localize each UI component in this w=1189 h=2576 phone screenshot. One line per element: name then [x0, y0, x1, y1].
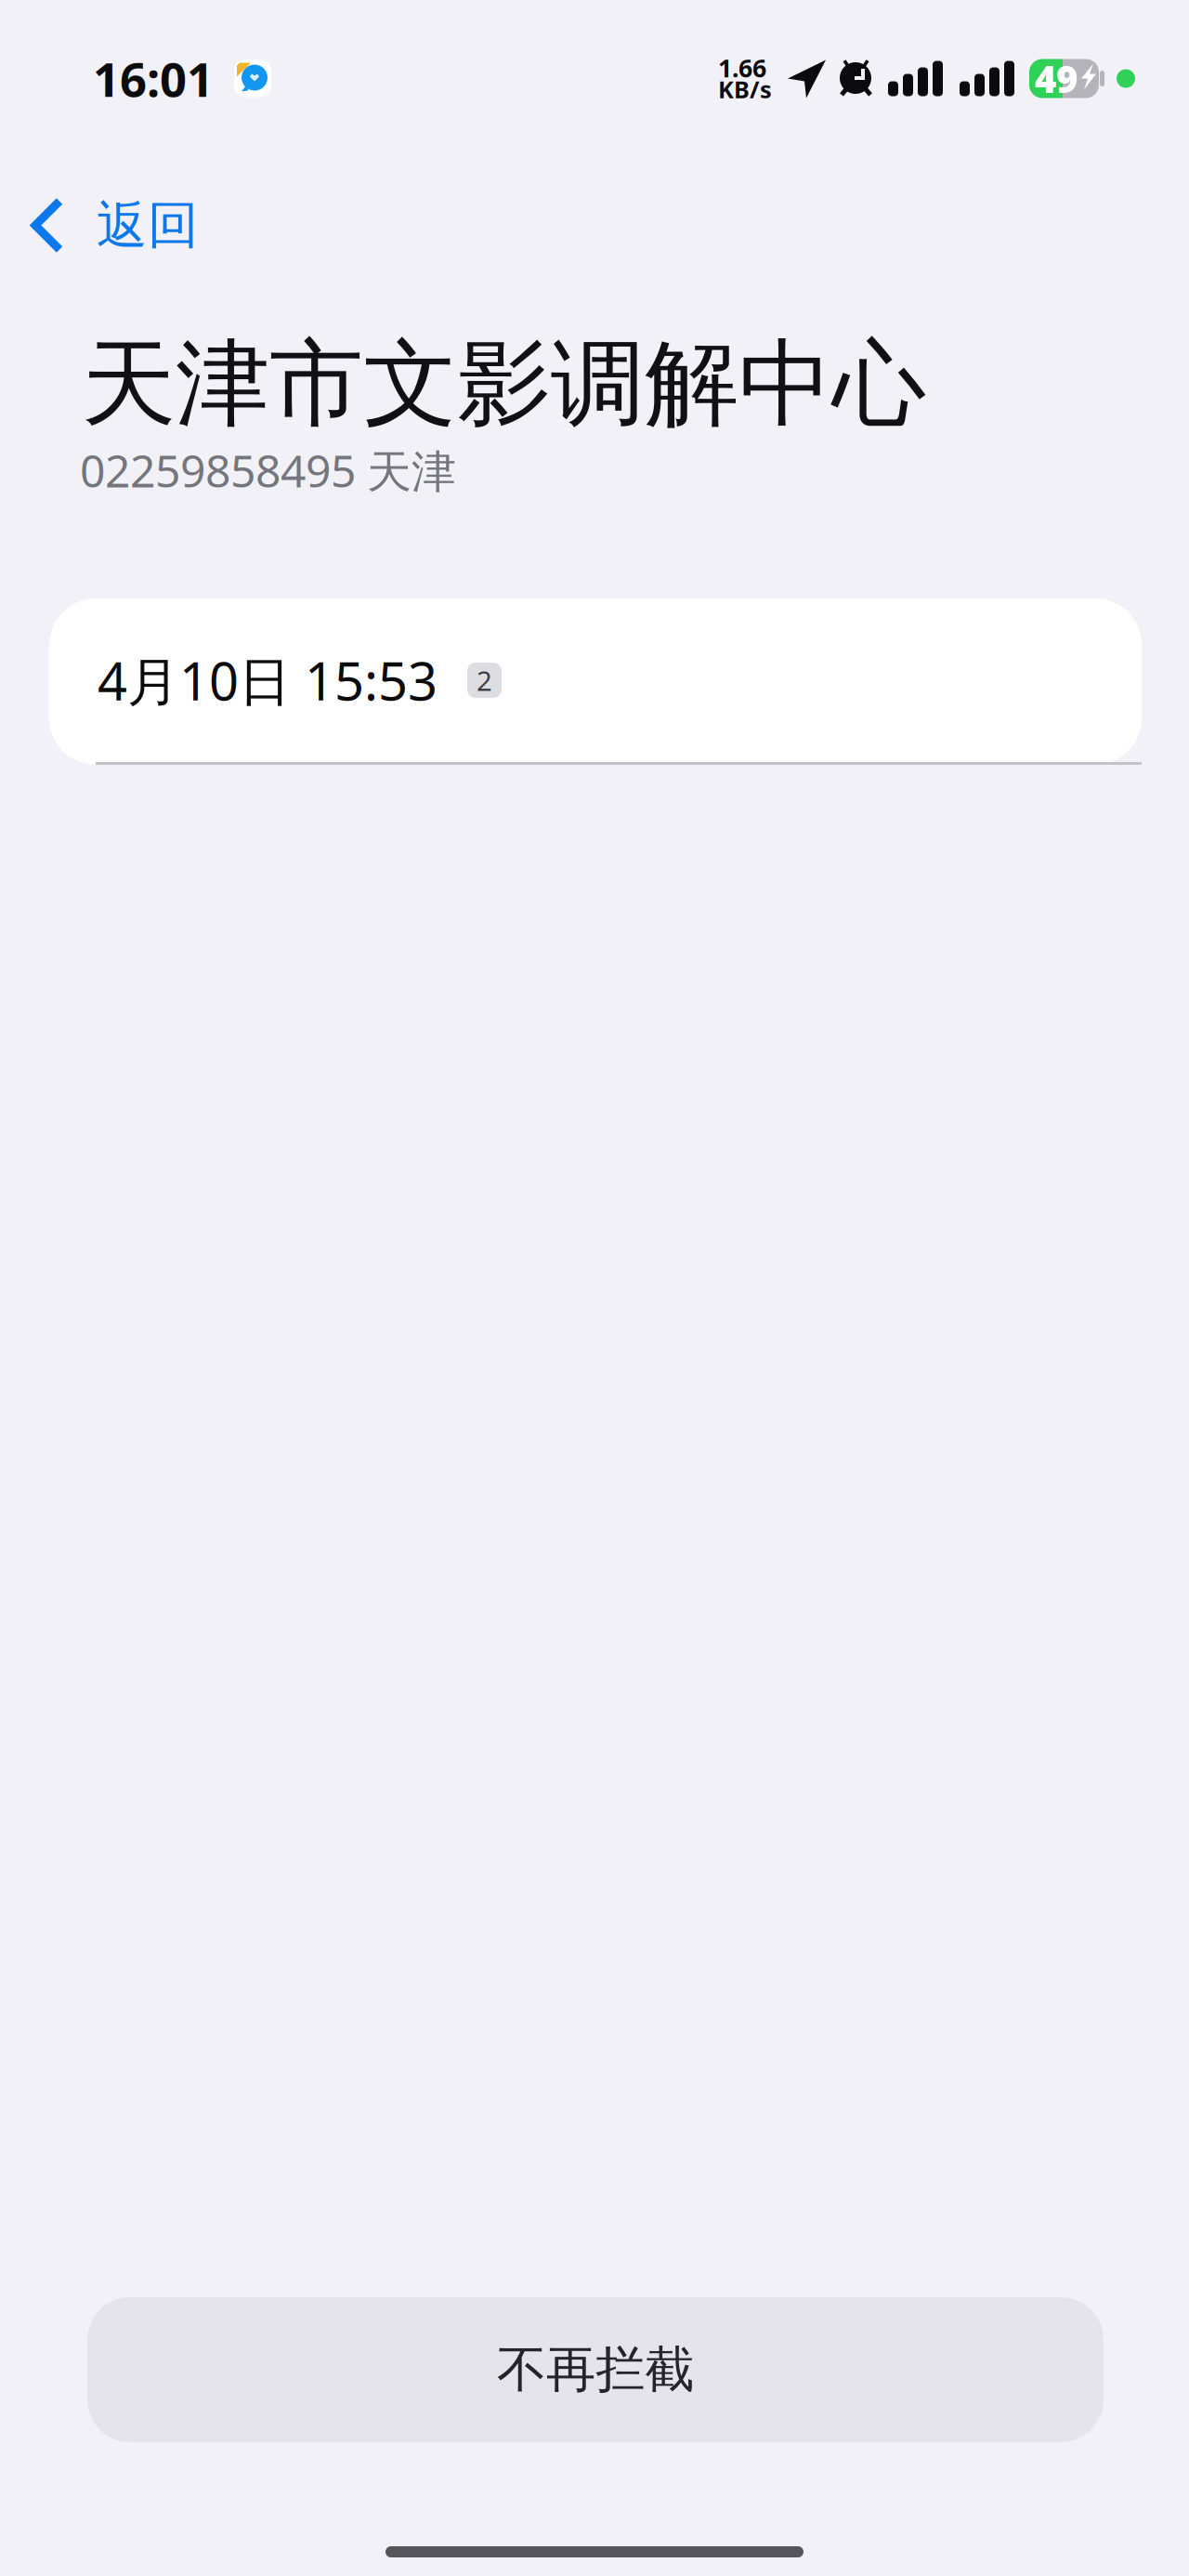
button[interactable]: 返回	[0, 157, 1189, 294]
staticText: 1.66	[718, 51, 766, 84]
staticText: KB/s	[718, 74, 772, 105]
button[interactable]: 4月10日 15:53	[49, 598, 1142, 765]
staticText: 不再拦截	[497, 2339, 694, 2400]
staticText: 16:01	[93, 47, 214, 110]
staticText: 2	[477, 662, 492, 698]
staticText: 返回	[97, 194, 199, 256]
button[interactable]: 不再拦截	[87, 2297, 1104, 2442]
staticText: 天津市文影调解中心	[82, 326, 926, 442]
staticText: 49	[1035, 54, 1078, 103]
staticText: 02259858495 天津	[80, 441, 456, 500]
staticText: 4月10日 15:53	[98, 646, 438, 715]
